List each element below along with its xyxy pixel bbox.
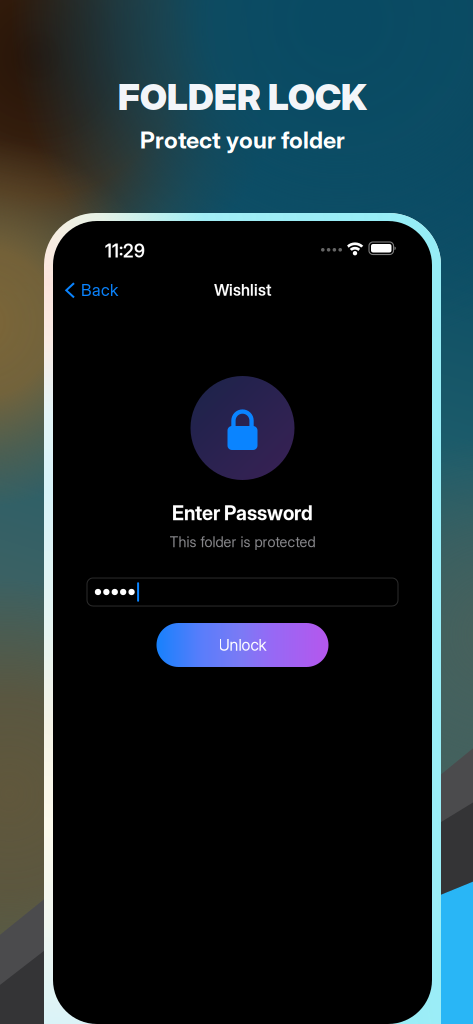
- staticText: Protect your folder: [140, 126, 345, 154]
- staticText: Back: [81, 280, 118, 300]
- button[interactable]: [87, 578, 398, 606]
- staticText: FOLDER LOCK: [118, 75, 367, 119]
- button[interactable]: Back: [53, 271, 126, 309]
- staticText: Unlock: [218, 635, 266, 655]
- staticText: This folder is protected: [169, 533, 315, 551]
- staticText: Enter Password: [172, 501, 313, 525]
- staticText: 11:29: [105, 240, 145, 262]
- staticText: Wishlist: [214, 280, 271, 299]
- button[interactable]: Unlock: [156, 623, 328, 667]
